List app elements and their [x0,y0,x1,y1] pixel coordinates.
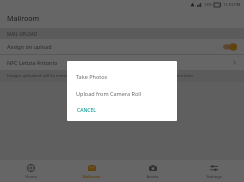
button[interactable]: CANCEL [76,105,97,116]
staticText: 13% [204,2,212,7]
button[interactable]: Mailroom [61,160,122,182]
staticText: Take Photos [76,73,108,80]
button[interactable]: Assign on upload toggle [223,43,237,51]
button[interactable]: Upload from Camera Roll [76,87,168,100]
staticText: Assign on upload [7,43,52,50]
button[interactable]: Assign on upload [0,39,244,54]
staticText: Assets [146,174,159,179]
staticText: MAIL UPLOAD [7,31,38,37]
staticText: Mailroom [82,174,101,179]
button[interactable]: Assets [122,160,183,182]
staticText: Home [25,174,37,179]
staticText: Mailroom [7,14,40,24]
button[interactable]: Settings [183,160,244,182]
staticText: Settings [206,174,222,179]
staticText: CANCEL [77,107,96,114]
staticText: Upload from Camera Roll [76,90,142,97]
button[interactable]: Home [0,160,61,182]
staticText: NFC Letizia Antonio [7,59,58,66]
button[interactable]: Take Photos [76,70,168,83]
staticText: 11:53 PM [223,2,241,7]
button[interactable]: NFC Letizia Antonio [0,55,244,70]
staticText: Images uploaded will be immediately assi… [7,73,194,79]
